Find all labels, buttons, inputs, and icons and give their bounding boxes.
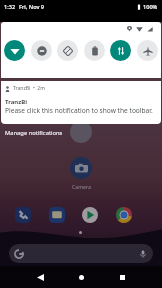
- staticText: Fri, Nov 9: [19, 3, 45, 11]
- button[interactable]: Airplane mode: [137, 40, 158, 61]
- button[interactable]: Home: [61, 266, 102, 288]
- button[interactable]: Phone: [15, 207, 31, 223]
- staticText: 100%: [143, 3, 158, 11]
- button[interactable]: Do not disturb: [31, 40, 52, 61]
- staticText: TranzBi: [5, 98, 27, 106]
- button[interactable]: Wi-Fi: [4, 40, 25, 61]
- staticText: TranzBi • 2m: [13, 85, 45, 92]
- button[interactable]: Back: [19, 266, 61, 288]
- button[interactable]: Camera: [60, 157, 102, 190]
- button[interactable]: Chrome: [116, 207, 132, 223]
- staticText: Camera: [72, 183, 91, 190]
- button[interactable]: Auto-rotate: [57, 40, 78, 61]
- button[interactable]: Mobile data: [110, 40, 131, 61]
- button[interactable]: Contacts: [70, 121, 92, 143]
- button[interactable]: Manage notifications: [5, 129, 63, 137]
- staticText: Manage notifications: [5, 129, 63, 137]
- button[interactable]: Messages: [49, 207, 65, 223]
- staticText: 1:32: [4, 3, 16, 11]
- staticText: Please click this notification to show t…: [5, 106, 153, 115]
- button[interactable]: Recents: [102, 266, 143, 288]
- button[interactable]: Battery saver: [84, 40, 105, 61]
- button[interactable]: TranzBi • 2m: [1, 81, 161, 124]
- button[interactable]: Search: [9, 244, 153, 263]
- button[interactable]: Play Store: [82, 207, 98, 223]
